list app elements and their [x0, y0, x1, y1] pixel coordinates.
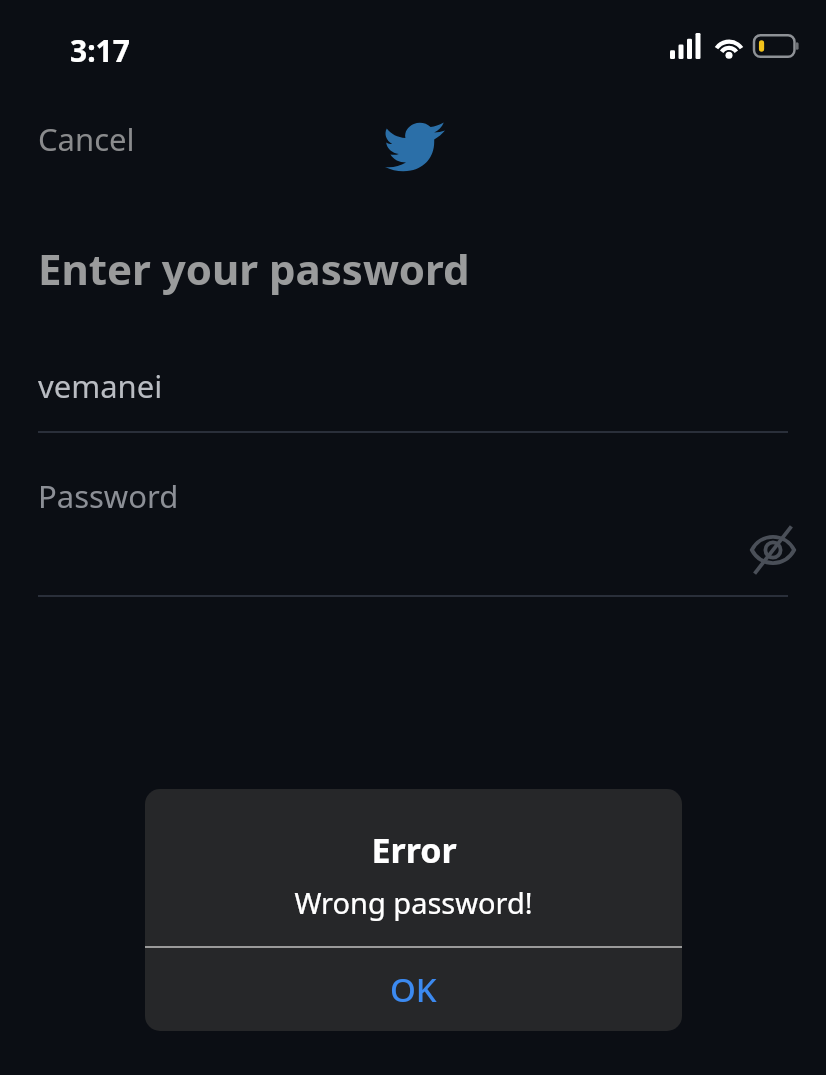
staticText: Wrong password!: [294, 883, 533, 922]
staticText: Error: [371, 827, 457, 873]
button[interactable]: Show password: [746, 523, 800, 577]
button[interactable]: vemanei: [0, 365, 826, 431]
staticText: vemanei: [38, 365, 163, 407]
staticText: Cancel: [38, 118, 135, 160]
staticText: Password: [38, 475, 179, 517]
staticText: Enter your password: [38, 240, 470, 297]
staticText: 3:17: [70, 30, 130, 71]
button[interactable]: Cancel: [22, 110, 151, 168]
button[interactable]: OK: [145, 948, 682, 1031]
button[interactable]: Password: [0, 475, 826, 595]
staticText: OK: [390, 967, 437, 1012]
